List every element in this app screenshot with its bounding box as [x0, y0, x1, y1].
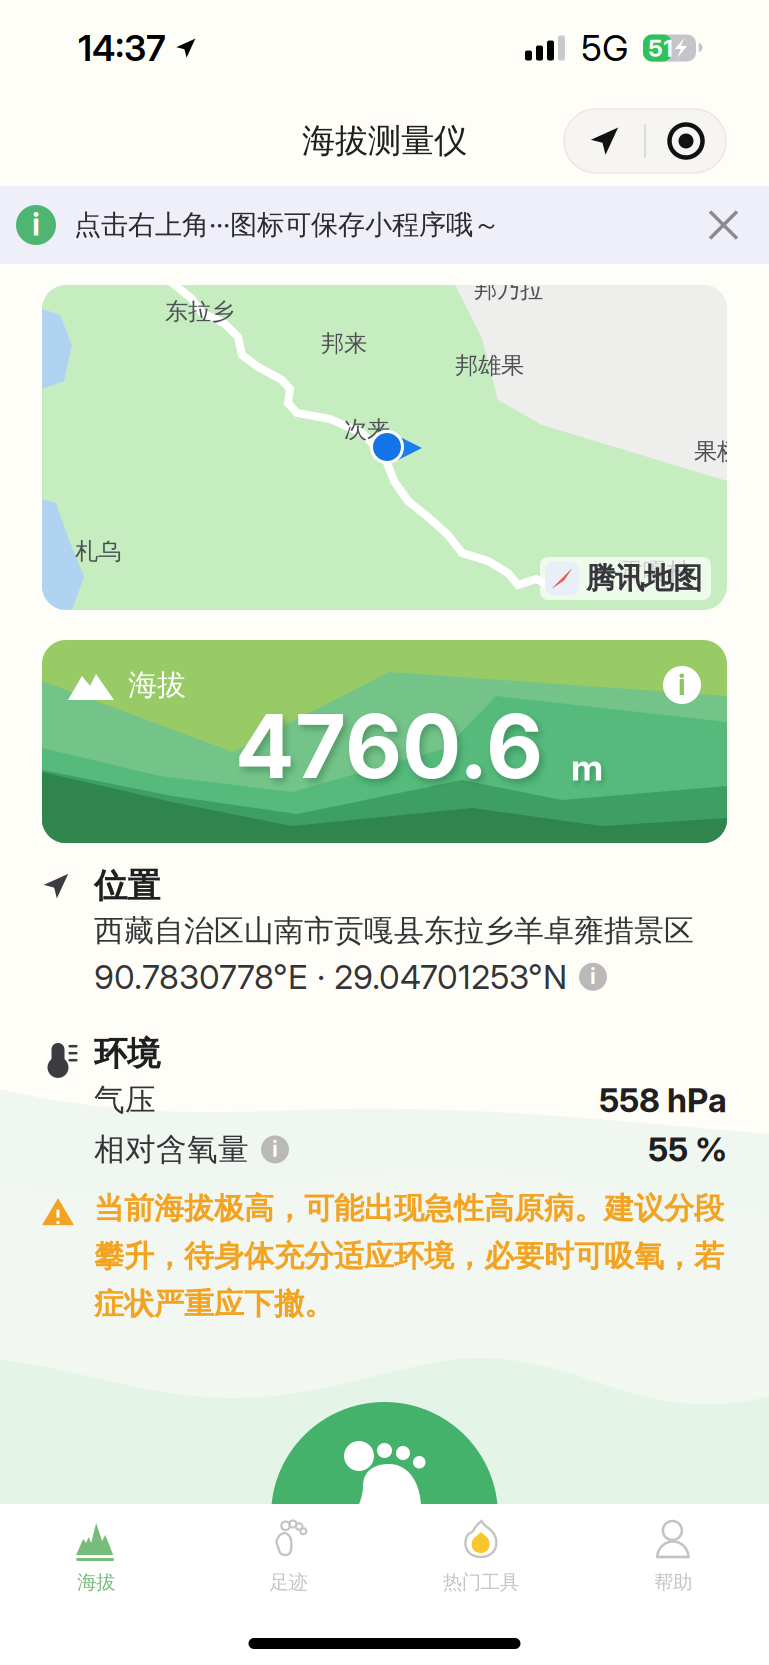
staticText: m	[571, 746, 603, 789]
staticText: 帮助	[654, 1570, 692, 1594]
button[interactable]: Close mini program	[646, 109, 726, 173]
staticText: 点击右上角···图标可保存小程序哦～	[74, 208, 500, 242]
staticText: 90.7830778°E · 29.04701253°N	[94, 957, 567, 997]
staticText: 札乌	[75, 537, 121, 566]
staticText: i	[272, 1136, 278, 1162]
staticText: 西藏自治区山南市贡嘎县东拉乡羊卓雍措景区	[94, 912, 694, 950]
staticText: 邦乃拉	[474, 275, 543, 304]
staticText: 14:37	[78, 26, 166, 70]
staticText: 位置	[94, 865, 160, 907]
staticText: 相对含氧量	[94, 1130, 249, 1169]
staticText: 当前海拔极高，可能出现急性高原病。建议分段攀升，待身体充分适应环境，必要时可吸氧…	[94, 1190, 724, 1323]
button[interactable]: Dismiss banner	[696, 191, 751, 258]
staticText: 51	[648, 33, 673, 62]
staticText: 腾讯地图	[586, 560, 702, 597]
staticText: i	[590, 963, 596, 989]
button[interactable]: Start recording footprint	[271, 1402, 498, 1629]
staticText: 海拔	[77, 1570, 115, 1594]
button[interactable]: Altitude info	[663, 666, 701, 704]
staticText: i	[32, 205, 40, 243]
staticText: 55 %	[648, 1129, 727, 1170]
button[interactable]: 足迹	[192, 1504, 384, 1604]
button[interactable]: 帮助	[577, 1504, 769, 1604]
staticText: 邦来	[321, 329, 367, 358]
staticText: 环境	[94, 1033, 160, 1075]
staticText: 海拔测量仪	[302, 120, 467, 162]
staticText: 4760.6	[235, 693, 543, 799]
staticText: 558 hPa	[599, 1080, 727, 1120]
button[interactable]: 热门工具	[384, 1504, 577, 1604]
staticText: 次来	[344, 415, 390, 444]
staticText: 气压	[94, 1081, 156, 1119]
staticText: 邦雄果	[455, 351, 524, 380]
staticText: 足迹	[269, 1570, 307, 1594]
staticText: 5G	[581, 26, 628, 70]
button[interactable]: More	[564, 109, 644, 173]
staticText: 热门工具	[443, 1570, 519, 1594]
staticText: i	[678, 666, 686, 702]
staticText: 东拉乡	[165, 297, 234, 326]
button[interactable]: 海拔	[0, 1504, 192, 1604]
staticText: 贡嘎村	[620, 557, 689, 586]
staticText: 海拔	[128, 666, 186, 703]
staticText: 果桥	[694, 437, 740, 466]
